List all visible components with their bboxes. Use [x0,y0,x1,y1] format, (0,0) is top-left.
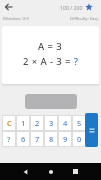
staticText: Mistakes: 0/3 [3,16,29,22]
button[interactable]: C [2,115,16,131]
button[interactable] [2,1,16,13]
staticText: 2 × A - 3 = ? [23,55,79,68]
staticText: 100 / 200 [60,4,83,11]
button[interactable]: 5 [72,115,86,131]
button[interactable]: 2 [30,115,44,131]
button[interactable] [43,165,58,178]
button[interactable] [25,94,77,109]
staticText: 2 [35,118,40,128]
button[interactable]: 3 [44,115,58,131]
button[interactable] [68,165,83,178]
button[interactable] [18,165,33,178]
staticText: 5 [77,118,82,128]
button[interactable]: 7 [30,131,44,147]
staticText: Difficulty: Easy [70,16,99,22]
staticText: A = 3 [38,40,63,53]
button[interactable]: 0 [72,131,86,147]
staticText: 4 [63,118,68,128]
button[interactable] [85,113,98,147]
staticText: 1 [21,118,26,128]
staticText: C [7,118,12,128]
button[interactable]: ? [2,131,16,147]
staticText: 8 [49,134,54,144]
button[interactable]: 9 [58,131,72,147]
button[interactable]: 4 [58,115,72,131]
staticText: ? [7,134,11,144]
button[interactable]: 8 [44,131,58,147]
staticText: 3 [49,118,54,128]
staticText: 0 [77,134,82,144]
staticText: 7 [35,134,40,144]
button[interactable]: 1 [16,115,30,131]
staticText: 6 [21,134,26,144]
button[interactable]: 100 / 200 [60,2,93,12]
button[interactable]: 6 [16,131,30,147]
staticText: 9 [63,134,68,144]
